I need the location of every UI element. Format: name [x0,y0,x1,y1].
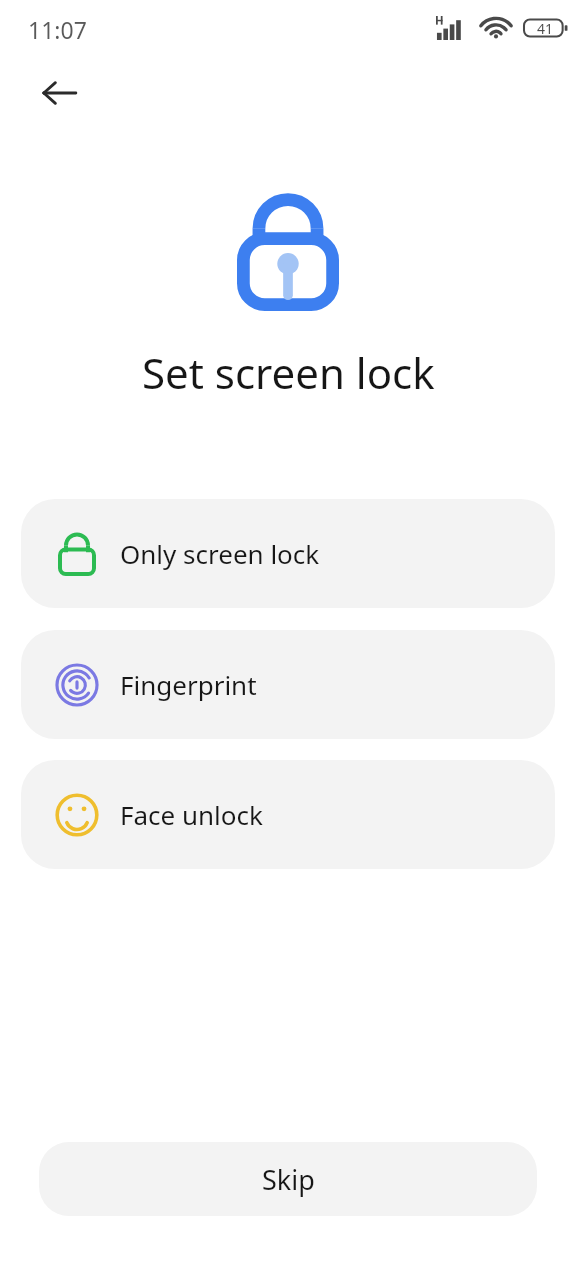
staticText: 11:07 [28,14,87,45]
button[interactable]: Only screen lock [21,499,555,608]
staticText: Set screen lock [142,344,435,401]
staticText: 41 [537,19,554,38]
staticText: Face unlock [120,797,263,832]
button[interactable]: Skip [39,1142,537,1216]
button[interactable]: Fingerprint [21,630,555,739]
staticText: Only screen lock [120,536,320,571]
button[interactable]: Face unlock [21,760,555,869]
staticText: Fingerprint [120,667,257,702]
button[interactable]: Back [22,67,96,119]
staticText: Skip [262,1161,315,1198]
